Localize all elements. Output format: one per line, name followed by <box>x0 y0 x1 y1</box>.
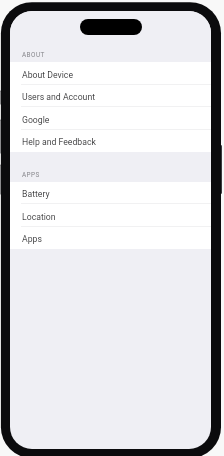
button[interactable]: Users and Account <box>10 85 211 107</box>
button[interactable]: Google <box>10 107 211 130</box>
button[interactable]: Location <box>10 204 211 227</box>
staticText: Battery <box>22 189 50 199</box>
button[interactable]: About Device <box>10 62 211 85</box>
staticText: Apps <box>22 234 42 244</box>
button[interactable]: Apps <box>10 227 211 249</box>
button[interactable]: Help and Feedback <box>10 130 211 152</box>
staticText: Google <box>22 115 50 125</box>
staticText: Location <box>22 212 56 222</box>
staticText: Users and Account <box>22 92 96 102</box>
staticText: ABOUT <box>22 51 45 59</box>
staticText: Help and Feedback <box>22 137 96 147</box>
staticText: APPS <box>22 171 40 179</box>
staticText: About Device <box>22 70 74 80</box>
button[interactable]: Battery <box>10 182 211 204</box>
